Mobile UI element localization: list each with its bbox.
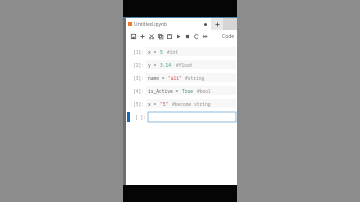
button[interactable]: Copy (156, 31, 165, 42)
staticText: Code (222, 33, 235, 40)
button[interactable]: [3]: (126, 71, 237, 84)
button[interactable]: [5]: (126, 97, 237, 110)
staticText: #become string (172, 101, 211, 107)
staticText: #string (185, 75, 205, 81)
button[interactable]: [ ]: (126, 110, 237, 124)
staticText: "ali" (168, 75, 182, 81)
button[interactable]: Untitled.ipynb (126, 18, 211, 30)
button[interactable]: Restart kernel (192, 31, 201, 42)
staticText: x = (148, 49, 160, 55)
staticText: [ ]: (135, 114, 146, 120)
button[interactable]: Save (129, 31, 138, 42)
staticText: x = (148, 101, 160, 107)
button[interactable]: New tab (211, 18, 223, 30)
staticText: #bool (197, 88, 211, 94)
staticText: [2]: (133, 62, 144, 68)
staticText: y = (148, 62, 160, 68)
staticText: name = (148, 75, 168, 81)
button[interactable]: Paste (165, 31, 174, 42)
button[interactable]: Stop (183, 31, 192, 42)
button[interactable]: Run (174, 31, 183, 42)
button[interactable]: Cut (147, 31, 156, 42)
staticText: is_Active = (148, 88, 182, 94)
staticText: #float (176, 62, 193, 68)
button[interactable]: Insert cell (138, 31, 147, 42)
staticText: [5]: (133, 101, 144, 107)
staticText: [1]: (133, 49, 144, 55)
staticText: Untitled.ipynb (134, 21, 168, 28)
staticText: True (182, 88, 194, 94)
staticText: [4]: (133, 88, 144, 94)
staticText: 3.14 (160, 62, 172, 68)
button[interactable]: [4]: (126, 84, 237, 97)
button[interactable]: [1]: (126, 45, 237, 58)
button[interactable]: Restart and run all (201, 31, 210, 42)
button[interactable]: Code (221, 33, 236, 40)
staticText: #int (167, 49, 179, 55)
button[interactable]: [2]: (126, 58, 237, 71)
staticText: 5 (160, 49, 163, 55)
staticText: [3]: (133, 75, 144, 81)
staticText: "5" (160, 101, 169, 107)
